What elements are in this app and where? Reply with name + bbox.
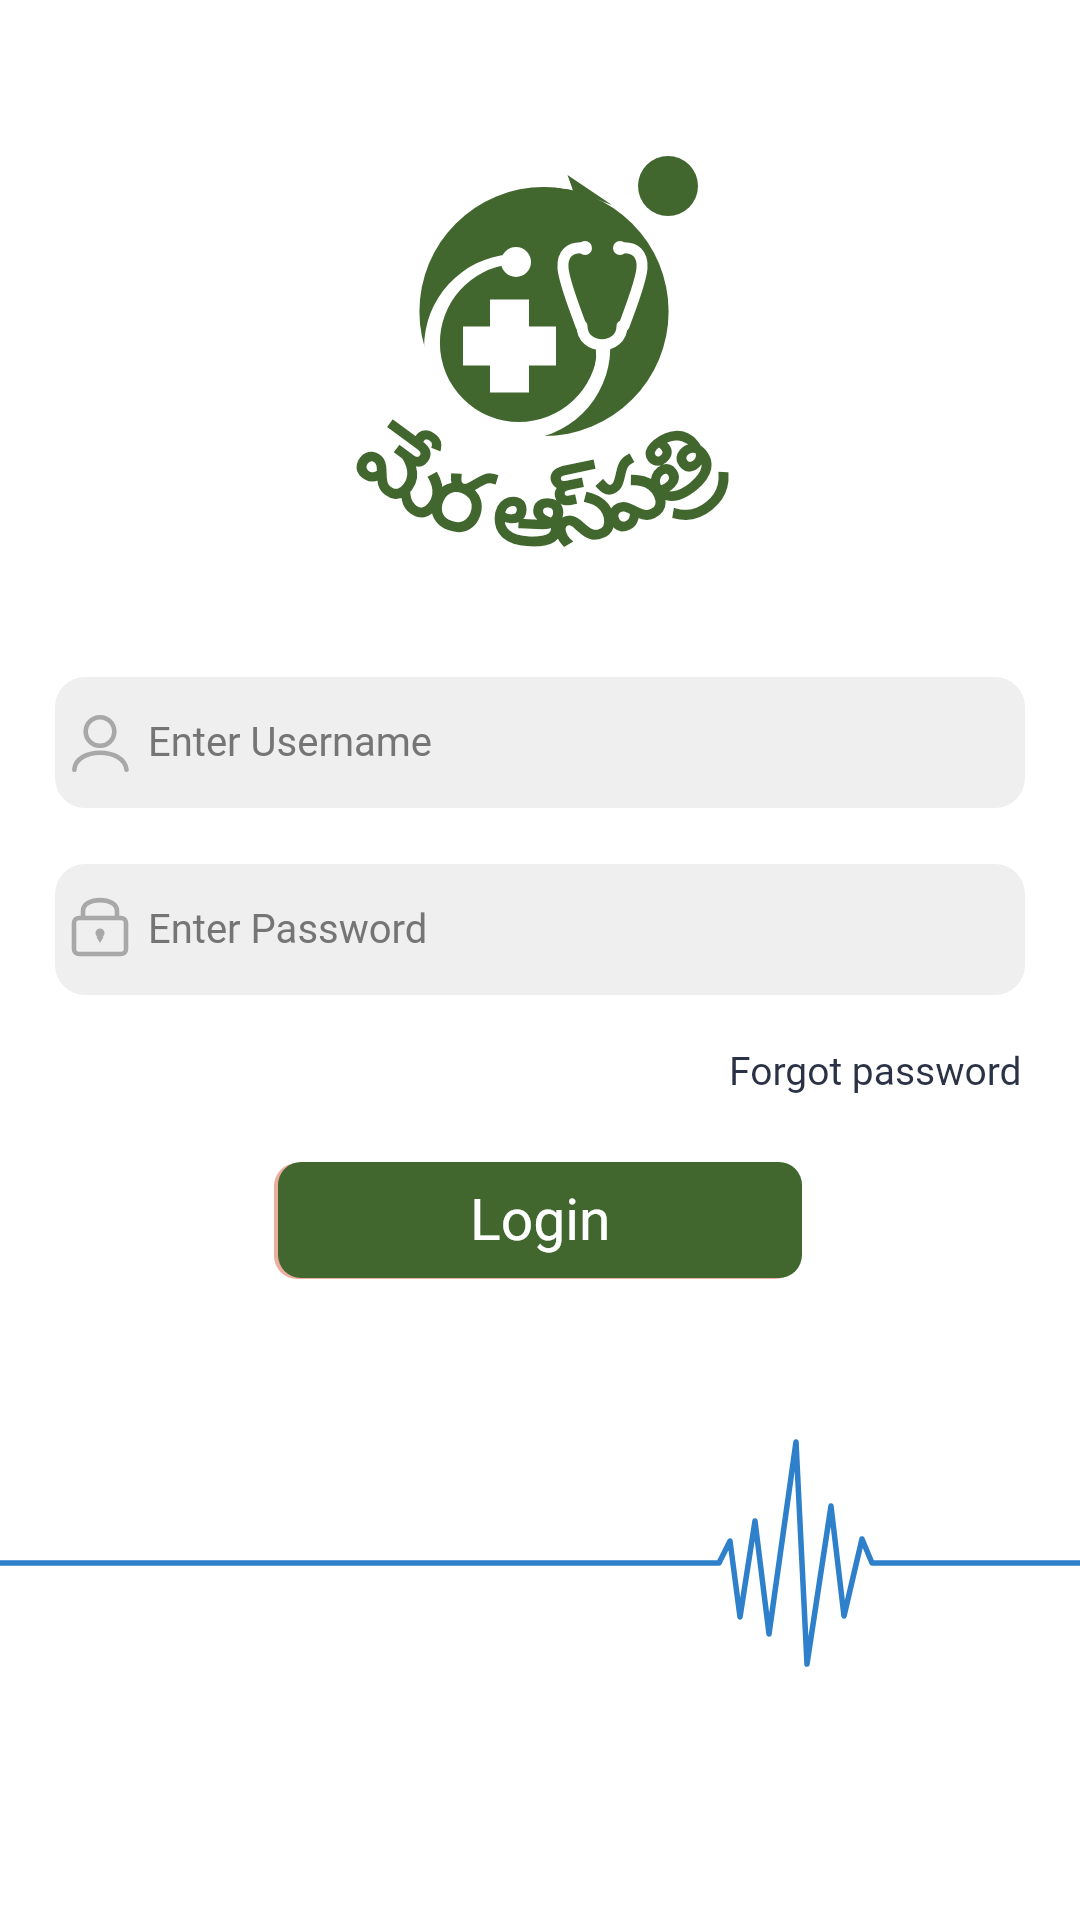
staticText: Login (470, 1187, 611, 1254)
staticText: Enter Username (148, 719, 433, 766)
button[interactable]: Login (278, 1162, 802, 1278)
button[interactable]: Enter Password (55, 864, 1025, 995)
button[interactable]: Enter Username (55, 677, 1025, 808)
button[interactable]: Forgot password (729, 1049, 1022, 1095)
staticText: Forgot password (729, 1049, 1022, 1095)
staticText: Enter Password (148, 906, 428, 953)
